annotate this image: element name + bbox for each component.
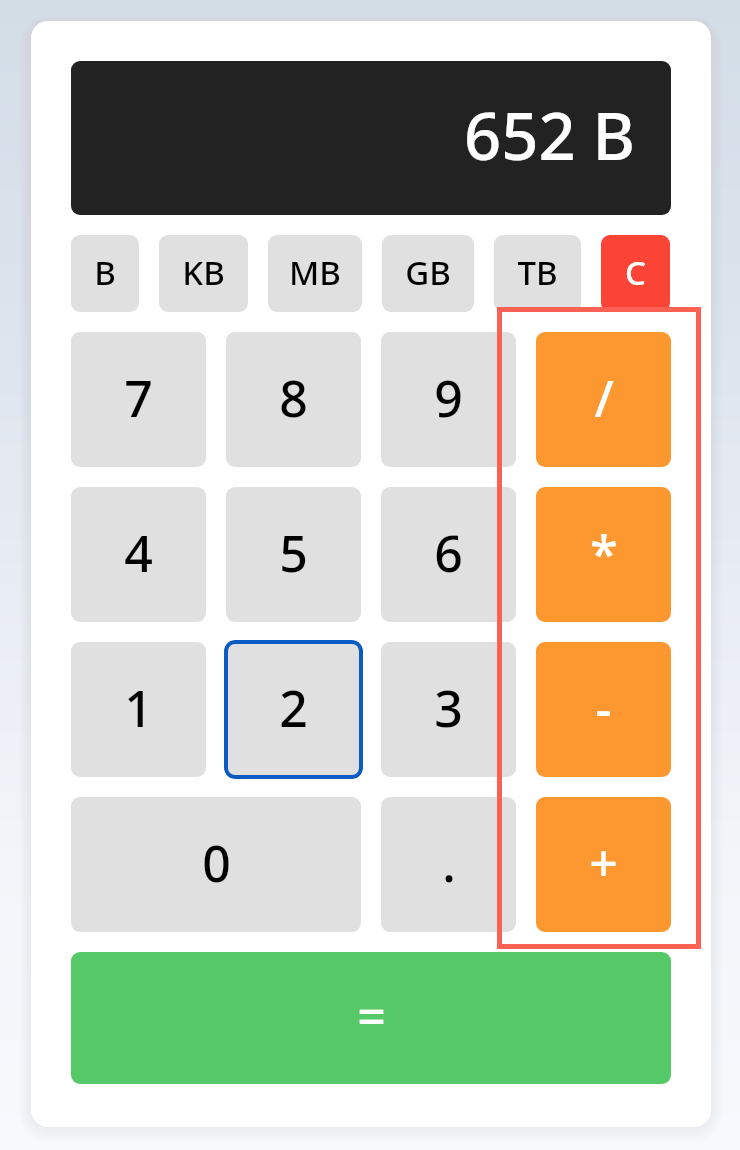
button[interactable]: TB [494,235,581,312]
button[interactable]: . [381,797,516,932]
staticText: B [94,255,116,293]
staticText: MB [289,255,341,293]
button[interactable]: 5 [226,487,361,622]
staticText: 3 [434,681,463,739]
button[interactable]: 1 [71,642,206,777]
staticText: * [590,526,618,584]
staticText: GB [405,255,451,293]
staticText: = [357,989,386,1047]
button[interactable]: / [536,332,671,467]
button[interactable]: 9 [381,332,516,467]
button[interactable]: B [71,235,139,312]
staticText: 2 [279,681,308,739]
button[interactable]: * [536,487,671,622]
button[interactable]: KB [159,235,248,312]
other: Result 652 B [71,61,671,215]
button[interactable]: 2 [224,640,363,779]
staticText: + [589,836,618,894]
staticText: TB [517,255,558,293]
staticText: 5 [279,526,308,584]
button[interactable]: 3 [381,642,516,777]
staticText: 1 [124,681,153,739]
staticText: 0 [202,836,231,894]
staticText: C [625,255,646,293]
staticText: / [594,371,614,429]
button[interactable]: - [536,642,671,777]
other: Operator column selection [497,307,701,949]
button[interactable]: 8 [226,332,361,467]
staticText: 8 [279,371,308,429]
staticText: 9 [434,371,463,429]
button[interactable]: 0 [71,797,361,932]
button[interactable]: 7 [71,332,206,467]
staticText: 652 B [464,101,635,176]
button[interactable]: Clear [601,235,670,312]
button[interactable]: GB [382,235,474,312]
button[interactable]: + [536,797,671,932]
staticText: KB [182,255,225,293]
button[interactable]: 4 [71,487,206,622]
staticText: - [595,681,612,739]
staticText: 4 [124,526,153,584]
button[interactable]: 6 [381,487,516,622]
button[interactable]: = [71,952,671,1084]
staticText: 6 [434,526,463,584]
staticText: 7 [124,371,153,429]
staticText: . [442,836,456,894]
button[interactable]: MB [268,235,362,312]
